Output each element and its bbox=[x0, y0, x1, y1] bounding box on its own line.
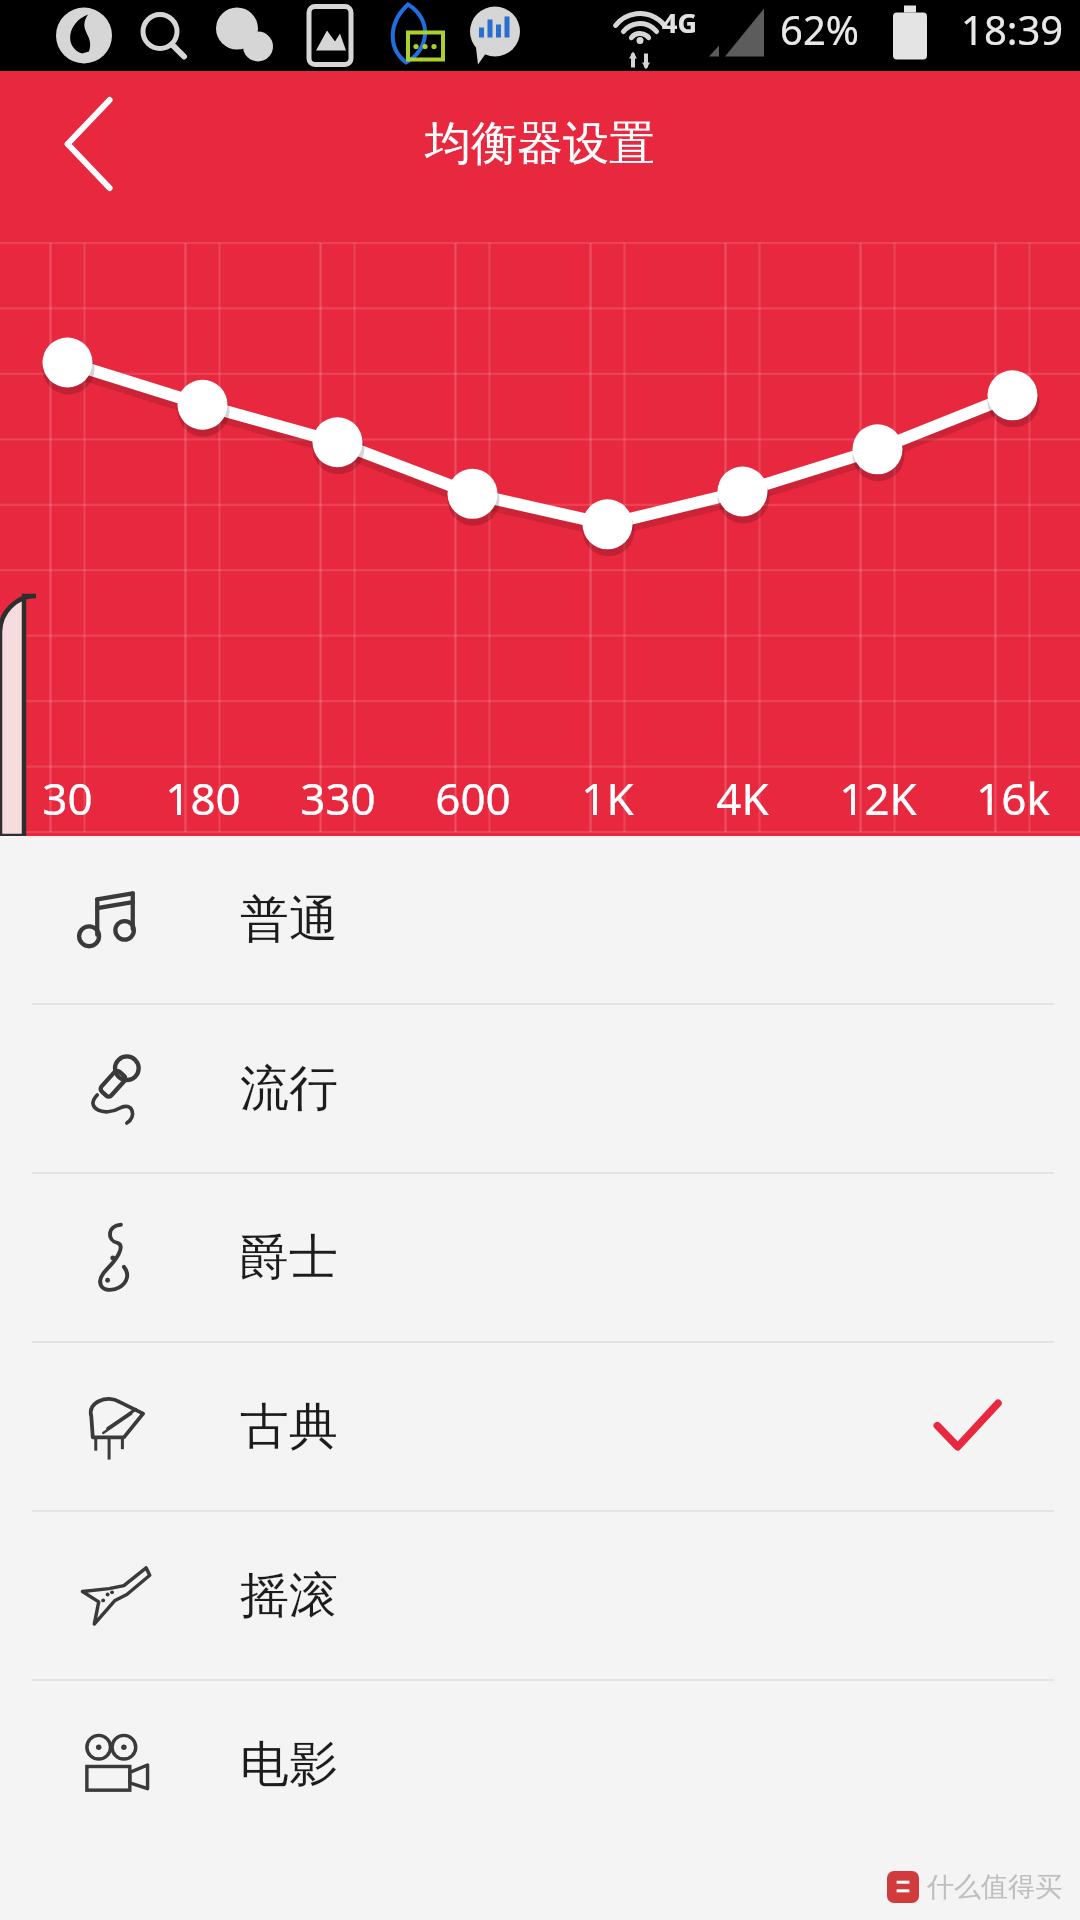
button[interactable]: 摇滚 bbox=[0, 1512, 1080, 1679]
staticText: 4G bbox=[662, 4, 697, 41]
staticText: 电影 bbox=[240, 1734, 338, 1796]
staticText: 什么值得买 bbox=[927, 1870, 1062, 1904]
staticText: 均衡器设置 bbox=[425, 115, 655, 173]
staticText: 12K bbox=[839, 768, 917, 828]
staticText: 600 bbox=[435, 768, 511, 828]
button[interactable]: Back bbox=[28, 88, 140, 200]
staticText: 爵士 bbox=[240, 1227, 338, 1289]
staticText: 30 bbox=[42, 768, 93, 828]
button[interactable]: 普通 bbox=[0, 836, 1080, 1003]
staticText: 1K bbox=[581, 768, 634, 828]
staticText: 古典 bbox=[240, 1396, 338, 1458]
staticText: 4K bbox=[716, 768, 769, 828]
staticText: 330 bbox=[300, 768, 376, 828]
button[interactable]: 古典 bbox=[0, 1343, 1080, 1510]
button[interactable]: 爵士 bbox=[0, 1174, 1080, 1341]
button[interactable]: 流行 bbox=[0, 1005, 1080, 1172]
staticText: 摇滚 bbox=[240, 1565, 338, 1627]
staticText: 18:39 bbox=[961, 2, 1064, 56]
staticText: 流行 bbox=[240, 1058, 338, 1120]
staticText: 62% bbox=[780, 2, 859, 56]
staticText: 16k bbox=[976, 768, 1050, 828]
button[interactable]: 电影 bbox=[0, 1681, 1080, 1848]
staticText: 普通 bbox=[240, 889, 338, 951]
staticText: 180 bbox=[165, 768, 241, 828]
